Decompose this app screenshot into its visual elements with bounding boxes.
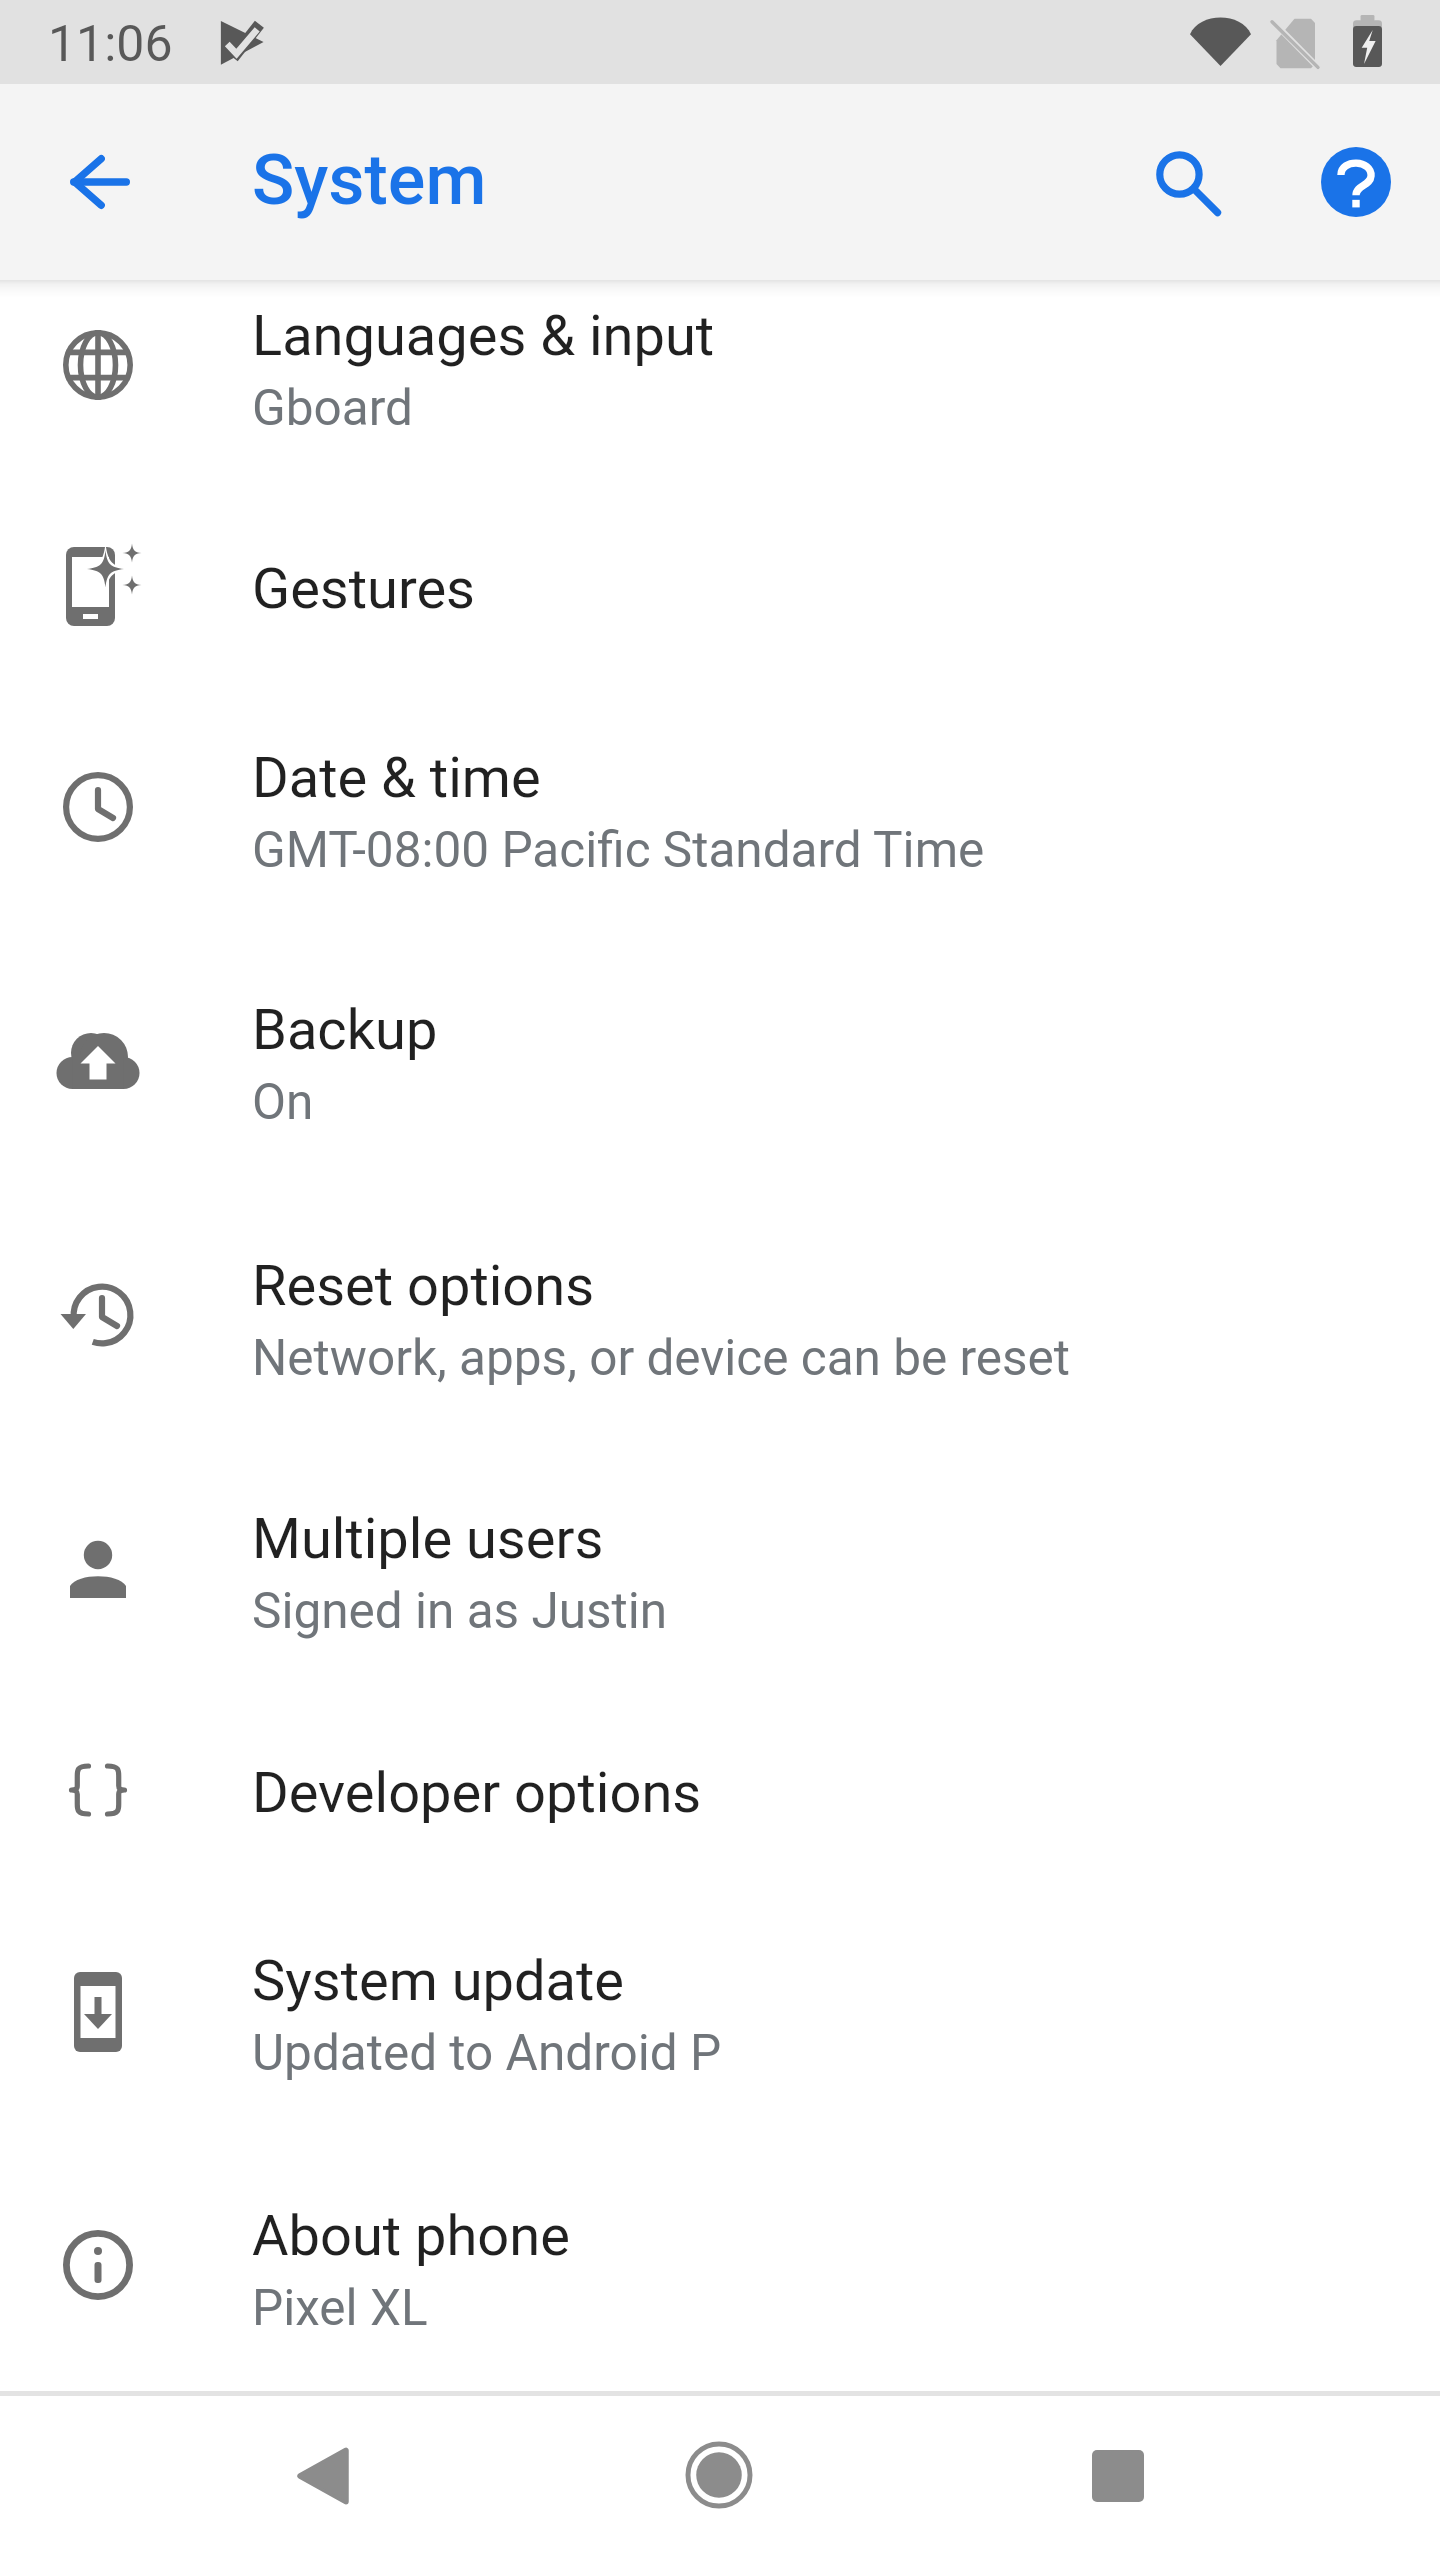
staticText: Gestures [252,556,475,622]
button[interactable]: Home [623,2393,815,2557]
button[interactable]: Recent apps [1022,2394,1214,2558]
button[interactable]: System update [0,1925,1440,2180]
button[interactable]: Back [227,2394,419,2558]
staticText: Gboard [252,379,413,437]
button[interactable]: Search [1123,118,1251,246]
staticText: GMT-08:00 Pacific Standard Time [252,821,985,879]
staticText: Network, apps, or device can be reset [252,1329,1071,1387]
staticText: 11:06 [48,15,173,74]
button[interactable]: Backup [0,974,1440,1230]
staticText: About phone [252,2203,570,2269]
staticText: Updated to Android P [252,2024,722,2082]
button[interactable]: Gestures [0,533,1440,722]
staticText: Developer options [252,1760,702,1826]
button[interactable]: Date & time [0,722,1440,974]
button[interactable]: Multiple users [0,1483,1440,1737]
staticText: Pixel XL [252,2279,428,2337]
button[interactable]: About phone [0,2180,1440,2391]
staticText: System [252,139,487,221]
staticText: Reset options [252,1253,595,1319]
button[interactable]: Reset options [0,1230,1440,1483]
staticText: Multiple users [252,1506,604,1572]
staticText: System update [252,1948,625,2014]
button[interactable]: Languages & input [0,280,1440,533]
staticText: Languages & input [252,303,715,369]
staticText: Date & time [252,745,541,811]
button[interactable]: Developer options [0,1737,1440,1925]
button[interactable]: Help [1292,118,1420,246]
staticText: Signed in as Justin [252,1582,668,1640]
button[interactable]: Navigate up [36,118,164,246]
staticText: Backup [252,997,438,1063]
staticText: On [252,1073,314,1131]
